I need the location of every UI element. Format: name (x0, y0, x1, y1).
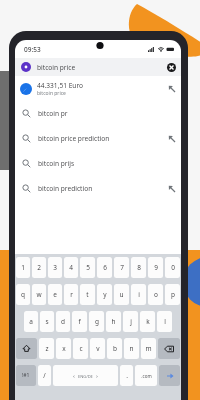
button[interactable]: r (64, 284, 78, 305)
staticText: r (70, 290, 73, 299)
staticText: 9 (154, 263, 158, 272)
button[interactable]: Shift (16, 338, 37, 359)
staticText: 7 (120, 263, 124, 272)
button[interactable]: c (73, 338, 88, 359)
other: Shift (22, 344, 31, 353)
staticText: f (78, 317, 81, 326)
staticText: a (29, 317, 33, 326)
staticText: 6 (103, 263, 107, 272)
staticText: . (126, 371, 128, 380)
staticText: z (45, 344, 49, 353)
staticText: 09:53 (24, 45, 41, 54)
button[interactable]: 2 (32, 257, 46, 278)
staticText: y (103, 290, 107, 299)
button[interactable]: 4 (64, 257, 78, 278)
staticText: h (111, 317, 116, 326)
staticText: 1 (21, 263, 25, 272)
button[interactable]: . (120, 365, 133, 386)
button[interactable]: j (123, 311, 138, 332)
button[interactable]: d (56, 311, 70, 332)
button[interactable]: Insert suggestion (165, 182, 179, 196)
button[interactable]: Insert suggestion (165, 132, 179, 146)
button[interactable]: 5 (80, 257, 95, 278)
button[interactable]: bitcoin prediction (15, 176, 181, 201)
button[interactable]: 6 (97, 257, 112, 278)
button[interactable]: Backspace (158, 338, 180, 359)
button[interactable]: 1 (16, 257, 30, 278)
staticText: e (53, 290, 57, 299)
staticText: ‹ (73, 372, 75, 380)
staticText: bitcoin prijs (38, 159, 75, 168)
button[interactable]: a (24, 311, 38, 332)
button[interactable]: s (40, 311, 54, 332)
button[interactable]: bitcoin pr (15, 101, 181, 126)
staticText: .com (141, 373, 152, 379)
staticText: c (79, 344, 83, 353)
staticText: bitcoin pr (38, 109, 68, 118)
button[interactable]: bitcoin prijs (15, 151, 181, 176)
button[interactable]: y (97, 284, 112, 305)
staticText: 8 (137, 263, 141, 272)
button[interactable]: u (114, 284, 129, 305)
button[interactable]: !#1 (16, 365, 36, 386)
button[interactable]: g (89, 311, 104, 332)
button[interactable]: 7 (114, 257, 129, 278)
button[interactable]: 0 (165, 257, 180, 278)
button[interactable]: / (38, 365, 51, 386)
staticText: bitcoin price (37, 63, 76, 72)
button[interactable]: l (157, 311, 172, 332)
staticText: / (43, 371, 46, 380)
staticText: u (119, 290, 124, 299)
staticText: l (164, 317, 166, 326)
staticText: 3 (53, 263, 57, 272)
button[interactable]: 44.331,51 Euro (15, 76, 181, 101)
staticText: x (62, 344, 66, 353)
staticText: q (21, 290, 25, 299)
button[interactable]: bitcoin price prediction (15, 126, 181, 151)
staticText: j (130, 317, 132, 326)
button[interactable]: n (124, 338, 139, 359)
staticText: o (154, 290, 158, 299)
button[interactable]: m (141, 338, 156, 359)
staticText: s (45, 317, 49, 326)
staticText: bitcoin price prediction (38, 134, 110, 143)
staticText: 4 (69, 263, 73, 272)
staticText: k (146, 317, 150, 326)
button[interactable]: v (90, 338, 105, 359)
button[interactable]: 3 (48, 257, 62, 278)
staticText: › (96, 372, 98, 380)
button[interactable]: f (72, 311, 87, 332)
button[interactable]: e (48, 284, 62, 305)
button[interactable]: Clear search (164, 60, 179, 75)
button[interactable]: p (165, 284, 180, 305)
button[interactable]: z (39, 338, 54, 359)
staticText: d (61, 317, 65, 326)
button[interactable]: q (16, 284, 30, 305)
staticText: 0 (171, 263, 175, 272)
button[interactable]: w (32, 284, 46, 305)
staticText: p (171, 290, 175, 299)
button[interactable]: o (148, 284, 163, 305)
staticText: m (145, 344, 152, 353)
button[interactable]: 8 (131, 257, 146, 278)
staticText: ENG/DE (78, 374, 93, 379)
staticText: !#1 (22, 372, 30, 379)
button[interactable]: t (80, 284, 95, 305)
staticText: bitcoin price (37, 90, 66, 97)
button[interactable]: bitcoin price (15, 58, 181, 76)
button[interactable]: .com (135, 365, 157, 386)
button[interactable]: x (56, 338, 71, 359)
button[interactable]: i (131, 284, 146, 305)
staticText: v (96, 344, 100, 353)
button[interactable]: Insert suggestion (165, 82, 179, 96)
button[interactable]: ‹ (53, 365, 118, 386)
staticText: g (95, 317, 99, 326)
button[interactable]: b (107, 338, 122, 359)
button[interactable]: k (140, 311, 155, 332)
button[interactable] (159, 365, 180, 386)
staticText: b (113, 344, 117, 353)
staticText: 5 (86, 263, 90, 272)
staticText: 2 (37, 263, 41, 272)
button[interactable]: h (106, 311, 121, 332)
button[interactable]: 9 (148, 257, 163, 278)
